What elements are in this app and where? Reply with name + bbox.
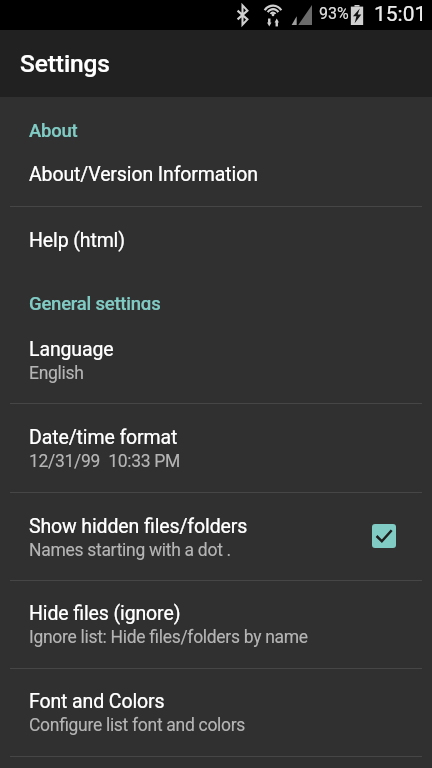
- staticText: General settings: [29, 293, 161, 310]
- staticText: 93%: [319, 4, 349, 23]
- button[interactable]: Font and Colors: [0, 669, 432, 756]
- staticText: About: [29, 120, 78, 139]
- staticText: Show hidden files/folders: [29, 515, 248, 538]
- button[interactable]: Hide files (ignore): [0, 581, 432, 668]
- staticText: Configure list font and colors: [29, 715, 246, 736]
- button[interactable]: Help (html): [0, 207, 432, 272]
- staticText: Settings: [20, 49, 110, 78]
- staticText: About/Version Information: [29, 163, 258, 186]
- staticText: English: [29, 363, 84, 384]
- staticText: Language: [29, 338, 114, 361]
- staticText: Date/time format: [29, 426, 178, 449]
- staticText: Help (html): [29, 229, 125, 252]
- button[interactable]: Language: [0, 310, 432, 403]
- button[interactable]: Show hidden files/folders: [0, 493, 432, 580]
- staticText: Hide files (ignore): [29, 602, 181, 625]
- button[interactable]: About/Version Information: [0, 139, 432, 206]
- staticText: Ignore list: Hide files/folders by name: [29, 627, 308, 648]
- button[interactable]: Date/time format: [0, 404, 432, 492]
- staticText: 12/31/99 10:33 PM: [29, 451, 181, 472]
- staticText: 15:01: [374, 2, 427, 27]
- staticText: Names starting with a dot .: [29, 540, 231, 561]
- staticText: Font and Colors: [29, 690, 165, 713]
- button[interactable]: Show hidden files and folders checkbox: [372, 524, 396, 548]
